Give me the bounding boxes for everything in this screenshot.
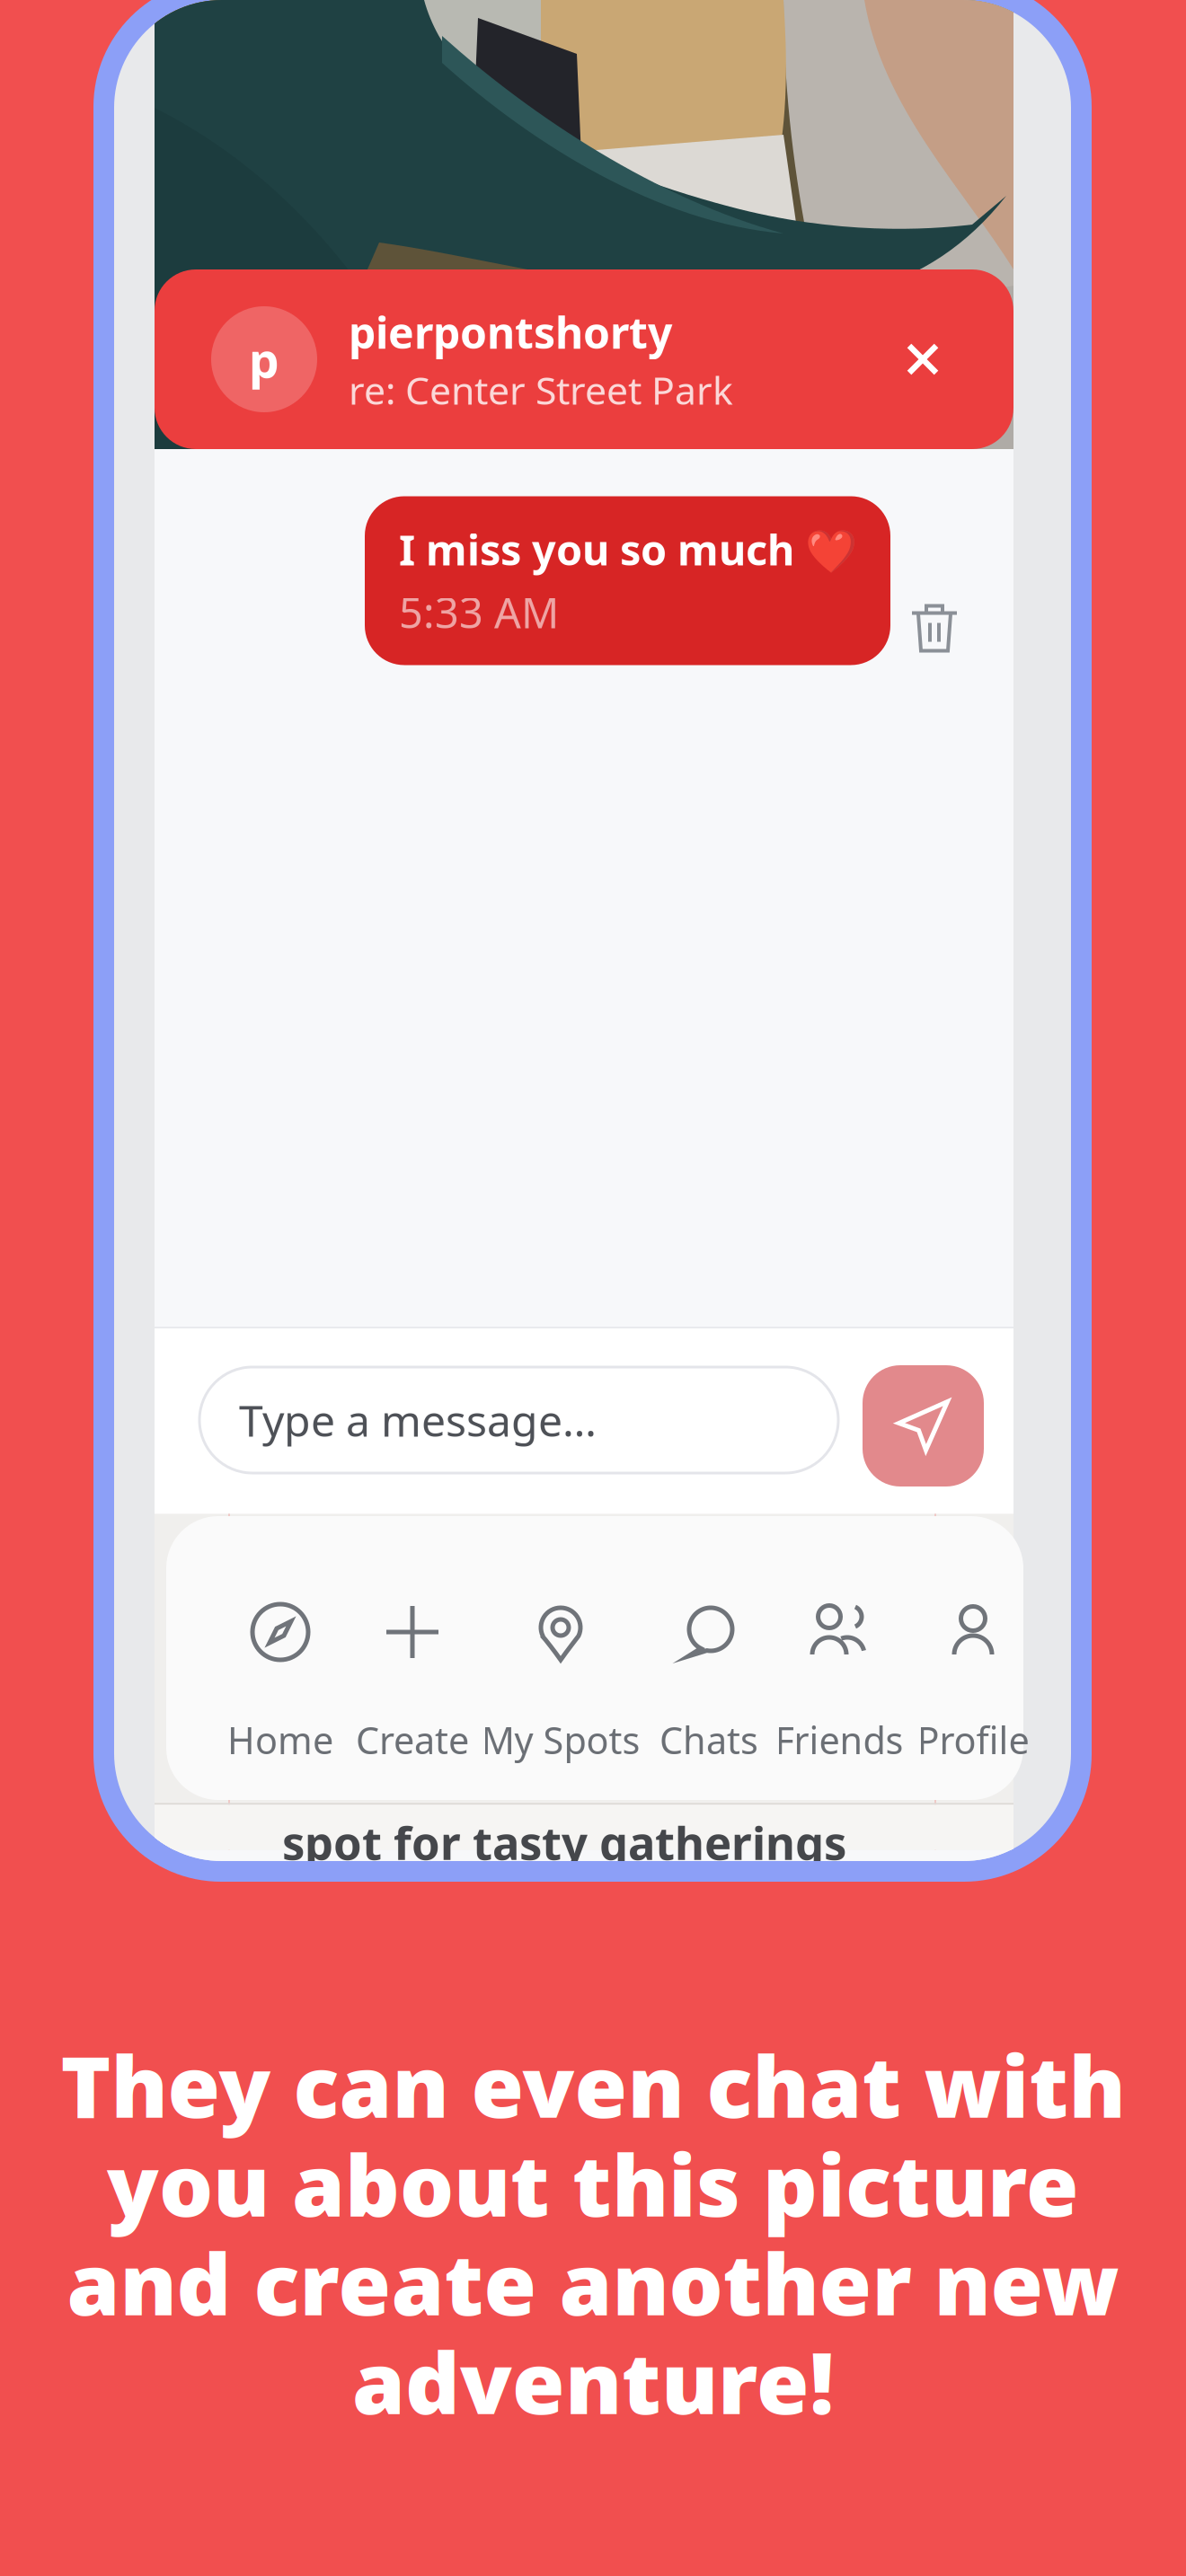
staticText: I miss you so much ❤️ bbox=[399, 521, 857, 577]
button[interactable]: Type a message… bbox=[199, 1367, 838, 1473]
button[interactable]: Friends bbox=[740, 1516, 938, 1800]
staticText: and create another new bbox=[67, 2226, 1119, 2339]
staticText: Create bbox=[356, 1715, 469, 1764]
staticText: re: Center Street Park bbox=[349, 364, 733, 415]
staticText: adventure! bbox=[352, 2325, 834, 2437]
staticText: Chats bbox=[659, 1715, 758, 1764]
staticText: Home bbox=[227, 1715, 333, 1764]
staticText: Profile bbox=[917, 1715, 1029, 1764]
staticText: My Spots bbox=[481, 1715, 640, 1764]
staticText: spot for tasty gatherings bbox=[282, 1812, 846, 1872]
button[interactable]: Home bbox=[181, 1516, 379, 1800]
button[interactable]: Send message bbox=[863, 1365, 984, 1486]
staticText: 5:33 AM bbox=[399, 584, 559, 640]
staticText: you about this picture bbox=[107, 2127, 1079, 2240]
staticText: p bbox=[249, 327, 279, 391]
button[interactable]: Create bbox=[314, 1516, 511, 1800]
staticText: pierpontshorty bbox=[349, 303, 672, 361]
button[interactable]: Close conversation bbox=[881, 318, 964, 401]
staticText: They can even chat with bbox=[61, 2028, 1125, 2141]
button[interactable]: My Spots bbox=[462, 1516, 659, 1800]
button[interactable]: Chats bbox=[610, 1516, 808, 1800]
staticText: Type a message… bbox=[239, 1391, 597, 1449]
button[interactable]: Delete message bbox=[884, 578, 985, 679]
button[interactable]: Profile bbox=[874, 1516, 1072, 1800]
staticText: Friends bbox=[775, 1715, 903, 1764]
